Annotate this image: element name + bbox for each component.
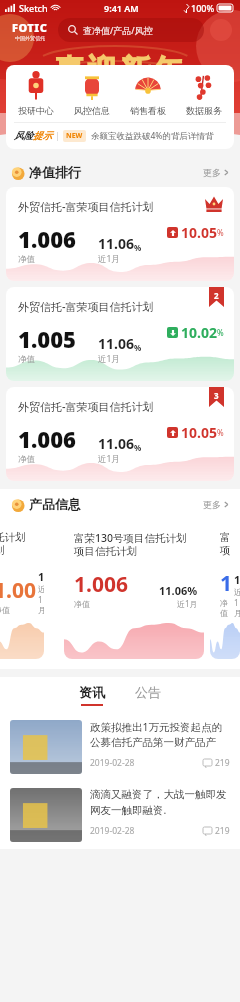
staticText: 投研中心: [18, 105, 54, 116]
staticText: %: [134, 242, 142, 253]
staticText: %: [217, 427, 224, 438]
staticText: 外贸信托-富荣项目信托计划: [18, 399, 154, 414]
staticText: 9:41 AM: [104, 2, 139, 14]
staticText: 净值: [74, 599, 90, 609]
staticText: %: [134, 442, 142, 453]
staticText: 净值: [18, 254, 35, 265]
button[interactable]: 富荣130号项目信托计划: [64, 519, 204, 659]
button[interactable]: 外贸信托-富荣项目信托计划: [6, 287, 234, 381]
button[interactable]: 公告: [135, 684, 161, 706]
staticText: 项目信托计划: [74, 545, 137, 558]
staticText: 3: [214, 390, 219, 401]
staticText: %: [217, 327, 224, 338]
staticText: 净值排行: [29, 164, 81, 180]
staticText: 净值: [18, 354, 35, 365]
staticText: 查净值/产品/风控: [83, 24, 153, 36]
staticText: 富荣1: [220, 531, 234, 544]
staticText: 销售看板: [130, 105, 166, 116]
staticText: 10.05: [181, 423, 217, 442]
button[interactable]: 风控信息: [66, 73, 118, 116]
staticText: Sketch: [19, 2, 48, 14]
staticText: 近1月: [98, 453, 120, 465]
staticText: 喜迎新年: [0, 52, 240, 90]
staticText: 1.006: [18, 224, 76, 254]
staticText: 1.006: [0, 576, 38, 605]
staticText: 更多: [203, 499, 221, 510]
staticText: 数据服务: [186, 105, 222, 116]
staticText: 219: [215, 757, 230, 769]
staticText: 10.02: [181, 323, 217, 342]
staticText: 余额宝收益跌破4%的背后详情背后...: [91, 130, 226, 142]
button[interactable]: 销售看板: [122, 73, 174, 116]
button[interactable]: 滴滴又融资了，大战一触即发网友一触即融资.: [0, 781, 240, 849]
staticText: %: [134, 342, 142, 353]
button[interactable]: 更多: [203, 499, 230, 510]
button[interactable]: 数据服务: [178, 73, 230, 116]
staticText: 净值: [18, 454, 35, 465]
button[interactable]: 更多: [203, 167, 230, 178]
staticText: 中国外贸信托: [15, 35, 45, 41]
staticText: 外贸信托-富荣项目信托计划: [18, 299, 154, 314]
staticText: 100%: [191, 2, 215, 14]
staticText: 2019-02-28: [90, 757, 135, 769]
staticText: NEW: [66, 131, 83, 141]
staticText: 风险: [14, 130, 33, 142]
staticText: 11.06: [98, 434, 134, 453]
staticText: 项目信: [220, 544, 234, 557]
staticText: 2: [214, 290, 219, 301]
staticText: 11.06%: [159, 583, 198, 598]
button[interactable]: 富荣1: [210, 519, 240, 659]
staticText: 外贸信托-富荣项目信托计划: [18, 199, 154, 214]
button[interactable]: 托计划: [0, 519, 44, 659]
staticText: 1.006: [18, 424, 76, 454]
staticText: 净值: [220, 598, 234, 618]
staticText: %: [217, 227, 224, 238]
staticText: 近1月: [98, 353, 120, 365]
staticText: 政策拟推出1万元投资起点的公募信托产品第一财产品产品...: [90, 720, 230, 749]
staticText: 资讯: [79, 684, 105, 700]
staticText: 提示: [33, 130, 52, 142]
button[interactable]: FOTIC logo: [8, 20, 52, 41]
staticText: 更多: [203, 167, 221, 178]
staticText: 富荣130号项目信托计划: [74, 531, 187, 545]
button[interactable]: 资讯: [79, 684, 105, 706]
button[interactable]: 查净值/产品/风控: [58, 18, 204, 42]
staticText: 近1月: [177, 598, 198, 609]
staticText: 公告: [135, 684, 161, 700]
button[interactable]: Profile: [210, 19, 232, 41]
button[interactable]: 投研中心: [10, 73, 62, 116]
staticText: 219: [215, 825, 230, 837]
button[interactable]: 政策拟推出1万元投资起点的公募信托产品第一财产品产品...: [0, 713, 240, 781]
staticText: 祝您达成理财宏愿: [0, 94, 240, 110]
staticText: 1.006: [220, 569, 234, 598]
staticText: 2019-02-28: [90, 825, 135, 837]
staticText: 10.05: [181, 223, 217, 242]
staticText: 产品信息: [29, 496, 81, 512]
staticText: 近1月: [98, 253, 120, 265]
button[interactable]: 外贸信托-富荣项目信托计划: [6, 187, 234, 281]
staticText: 净值: [0, 605, 10, 615]
staticText: 托计划: [0, 531, 26, 544]
button[interactable]: 外贸信托-富荣项目信托计划: [6, 387, 234, 481]
staticText: 风控信息: [74, 105, 110, 116]
staticText: 1.006: [74, 570, 128, 599]
staticText: 划: [0, 544, 5, 557]
staticText: 11.06: [98, 234, 134, 253]
staticText: FOTIC: [12, 20, 48, 35]
staticText: 1.005: [18, 324, 76, 354]
staticText: 滴滴又融资了，大战一触即发网友一触即融资.: [90, 788, 230, 817]
button[interactable]: 风险: [6, 123, 234, 149]
staticText: 11.06: [98, 334, 134, 353]
